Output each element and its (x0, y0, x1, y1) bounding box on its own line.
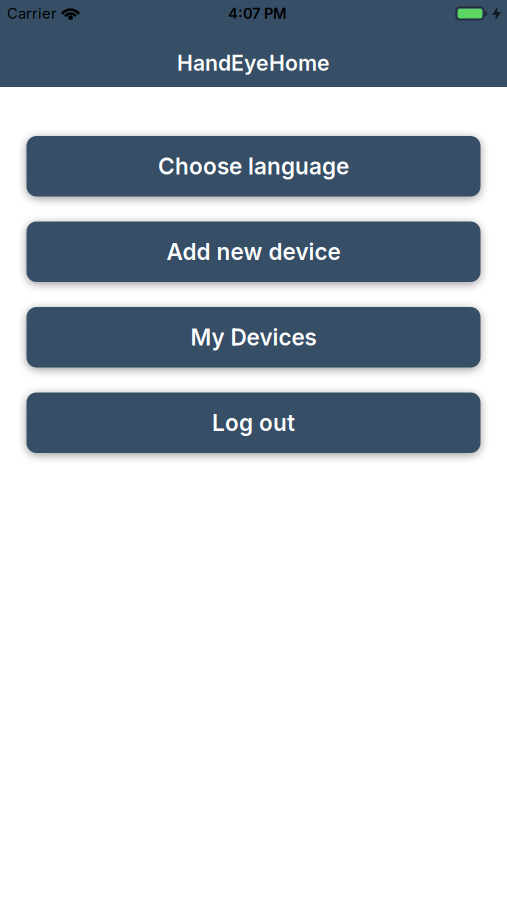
staticText: Log out (212, 409, 295, 436)
staticText: Carrier (7, 5, 57, 22)
button[interactable]: Add new device (26, 221, 480, 282)
staticText: HandEyeHome (177, 50, 330, 76)
staticText: Choose language (158, 153, 349, 180)
button[interactable]: My Devices (26, 307, 480, 367)
button[interactable]: Log out (26, 392, 480, 453)
staticText: My Devices (190, 324, 316, 351)
staticText: Add new device (166, 238, 340, 265)
staticText: 4:07 PM (228, 5, 287, 22)
button[interactable]: Choose language (26, 136, 480, 196)
